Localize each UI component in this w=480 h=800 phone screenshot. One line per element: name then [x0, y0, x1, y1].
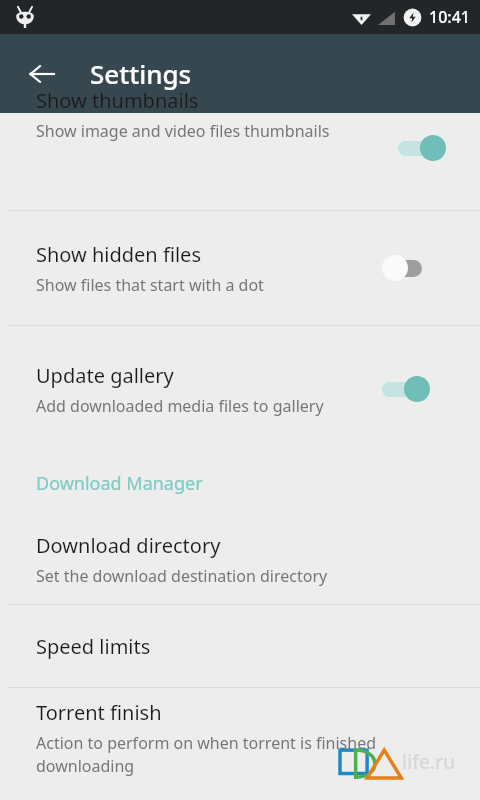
button[interactable]: Toggle on: [396, 131, 452, 165]
staticText: Action to perform on when torrent is fin…: [36, 732, 456, 777]
staticText: Set the download destination directory: [36, 565, 328, 587]
staticText: Download directory: [36, 532, 221, 559]
button[interactable]: Show hidden files: [0, 211, 480, 325]
button[interactable]: Back: [18, 50, 66, 98]
staticText: life.ru: [402, 749, 456, 775]
staticText: Show thumbnails: [36, 87, 199, 114]
button[interactable]: Toggle off: [380, 251, 436, 285]
staticText: Download Manager: [36, 471, 203, 496]
staticText: Add downloaded media files to gallery: [36, 395, 324, 417]
button[interactable]: Update gallery: [0, 326, 480, 452]
staticText: Speed limits: [36, 633, 151, 660]
button[interactable]: Show thumbnails: [0, 113, 480, 210]
staticText: Show files that start with a dot: [36, 274, 264, 296]
staticText: Settings: [90, 56, 192, 91]
button[interactable]: Speed limits: [0, 605, 480, 687]
button[interactable]: Torrent finish: [0, 688, 480, 788]
button[interactable]: Toggle on: [380, 372, 436, 406]
staticText: Torrent finish: [36, 699, 162, 726]
staticText: Show hidden files: [36, 241, 201, 268]
button[interactable]: Download directory: [0, 514, 480, 604]
staticText: 10:41: [429, 6, 470, 28]
staticText: Update gallery: [36, 362, 174, 389]
staticText: Show image and video files thumbnails: [36, 120, 330, 142]
